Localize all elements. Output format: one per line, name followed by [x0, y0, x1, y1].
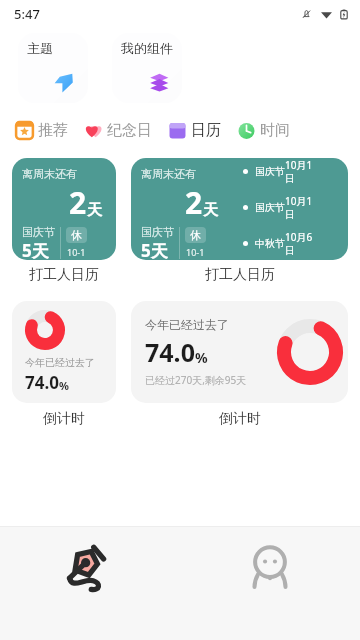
- staticText: %: [59, 378, 69, 393]
- staticText: %: [195, 348, 208, 367]
- staticText: 10-1: [186, 246, 205, 258]
- staticText: 10月6日: [285, 230, 320, 257]
- button[interactable]: 时间: [236, 117, 290, 144]
- staticText: 天: [203, 201, 218, 220]
- button[interactable]: 离周末还有: [12, 158, 116, 260]
- staticText: 国庆节: [22, 225, 55, 239]
- staticText: 推荐: [38, 121, 68, 140]
- button[interactable]: 今年已经过去了: [12, 301, 116, 403]
- button[interactable]: 日历: [167, 117, 221, 144]
- staticText: 5天: [141, 239, 168, 260]
- staticText: 国庆节: [255, 201, 285, 214]
- staticText: 74.0: [25, 371, 59, 394]
- staticText: 打工人日历: [29, 266, 99, 284]
- button[interactable]: Widgets: [0, 527, 180, 640]
- staticText: 10月1日: [285, 158, 320, 185]
- staticText: 5天: [22, 239, 49, 260]
- staticText: 今年已经过去了: [25, 356, 95, 369]
- button[interactable]: 推荐: [14, 117, 68, 144]
- staticText: 已经过270天,剩余95天: [145, 373, 247, 387]
- staticText: 休: [190, 228, 201, 242]
- staticText: 10-1: [67, 246, 86, 258]
- staticText: 我的组件: [121, 40, 173, 56]
- staticText: 国庆节: [255, 165, 285, 178]
- staticText: 日历: [191, 121, 221, 140]
- staticText: 中秋节: [255, 237, 285, 250]
- button[interactable]: 离周末还有: [131, 158, 348, 260]
- staticText: 5:47: [14, 5, 40, 23]
- button[interactable]: 纪念日: [83, 117, 152, 144]
- staticText: 主题: [27, 40, 53, 56]
- button[interactable]: 我的组件: [112, 33, 182, 103]
- staticText: 打工人日历: [205, 266, 275, 284]
- staticText: 10月1日: [285, 194, 320, 221]
- staticText: 离周末还有: [22, 167, 77, 181]
- staticText: 国庆节: [141, 225, 174, 239]
- staticText: 纪念日: [107, 121, 152, 140]
- staticText: 2: [69, 182, 87, 223]
- staticText: 时间: [260, 121, 290, 140]
- button[interactable]: 今年已经过去了: [131, 301, 348, 403]
- staticText: 休: [71, 228, 82, 242]
- staticText: 天: [87, 201, 102, 220]
- staticText: 今年已经过去了: [145, 317, 229, 332]
- staticText: 倒计时: [219, 410, 261, 428]
- staticText: 倒计时: [43, 410, 85, 428]
- staticText: 2: [185, 182, 203, 223]
- button[interactable]: Profile: [180, 527, 360, 640]
- staticText: 离周末还有: [141, 167, 196, 181]
- staticText: 74.0: [145, 335, 195, 369]
- button[interactable]: 主题: [18, 33, 88, 103]
